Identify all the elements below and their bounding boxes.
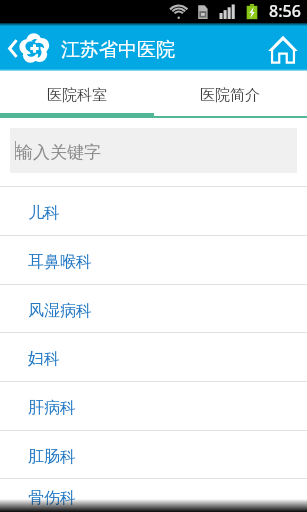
button[interactable]: Back: [0, 23, 175, 71]
button[interactable]: 输入关键字: [10, 128, 297, 173]
button[interactable]: 耳鼻喉科: [0, 236, 307, 284]
staticText: 耳鼻喉科: [28, 252, 92, 272]
staticText: 风湿病科: [28, 301, 92, 321]
button[interactable]: 妇科: [0, 333, 307, 381]
button[interactable]: 儿科: [0, 187, 307, 235]
other: Back: [8, 39, 17, 58]
button[interactable]: 骨伤科: [0, 479, 307, 512]
staticText: 医院简介: [200, 86, 260, 105]
staticText: 江苏省中医院: [61, 38, 175, 62]
button[interactable]: 医院科室: [0, 71, 153, 113]
staticText: 肝病科: [28, 398, 76, 418]
staticText: 儿科: [28, 203, 60, 223]
button[interactable]: Home: [259, 23, 307, 71]
button[interactable]: 肛肠科: [0, 431, 307, 478]
button[interactable]: 肝病科: [0, 382, 307, 430]
button[interactable]: 医院简介: [153, 71, 307, 113]
staticText: 肛肠科: [28, 447, 76, 467]
staticText: 妇科: [28, 349, 60, 369]
staticText: 8:56: [269, 0, 301, 22]
staticText: 医院科室: [47, 86, 107, 105]
staticText: 输入关键字: [16, 142, 101, 163]
button[interactable]: 风湿病科: [0, 285, 307, 332]
staticText: 骨伤科: [28, 488, 76, 508]
